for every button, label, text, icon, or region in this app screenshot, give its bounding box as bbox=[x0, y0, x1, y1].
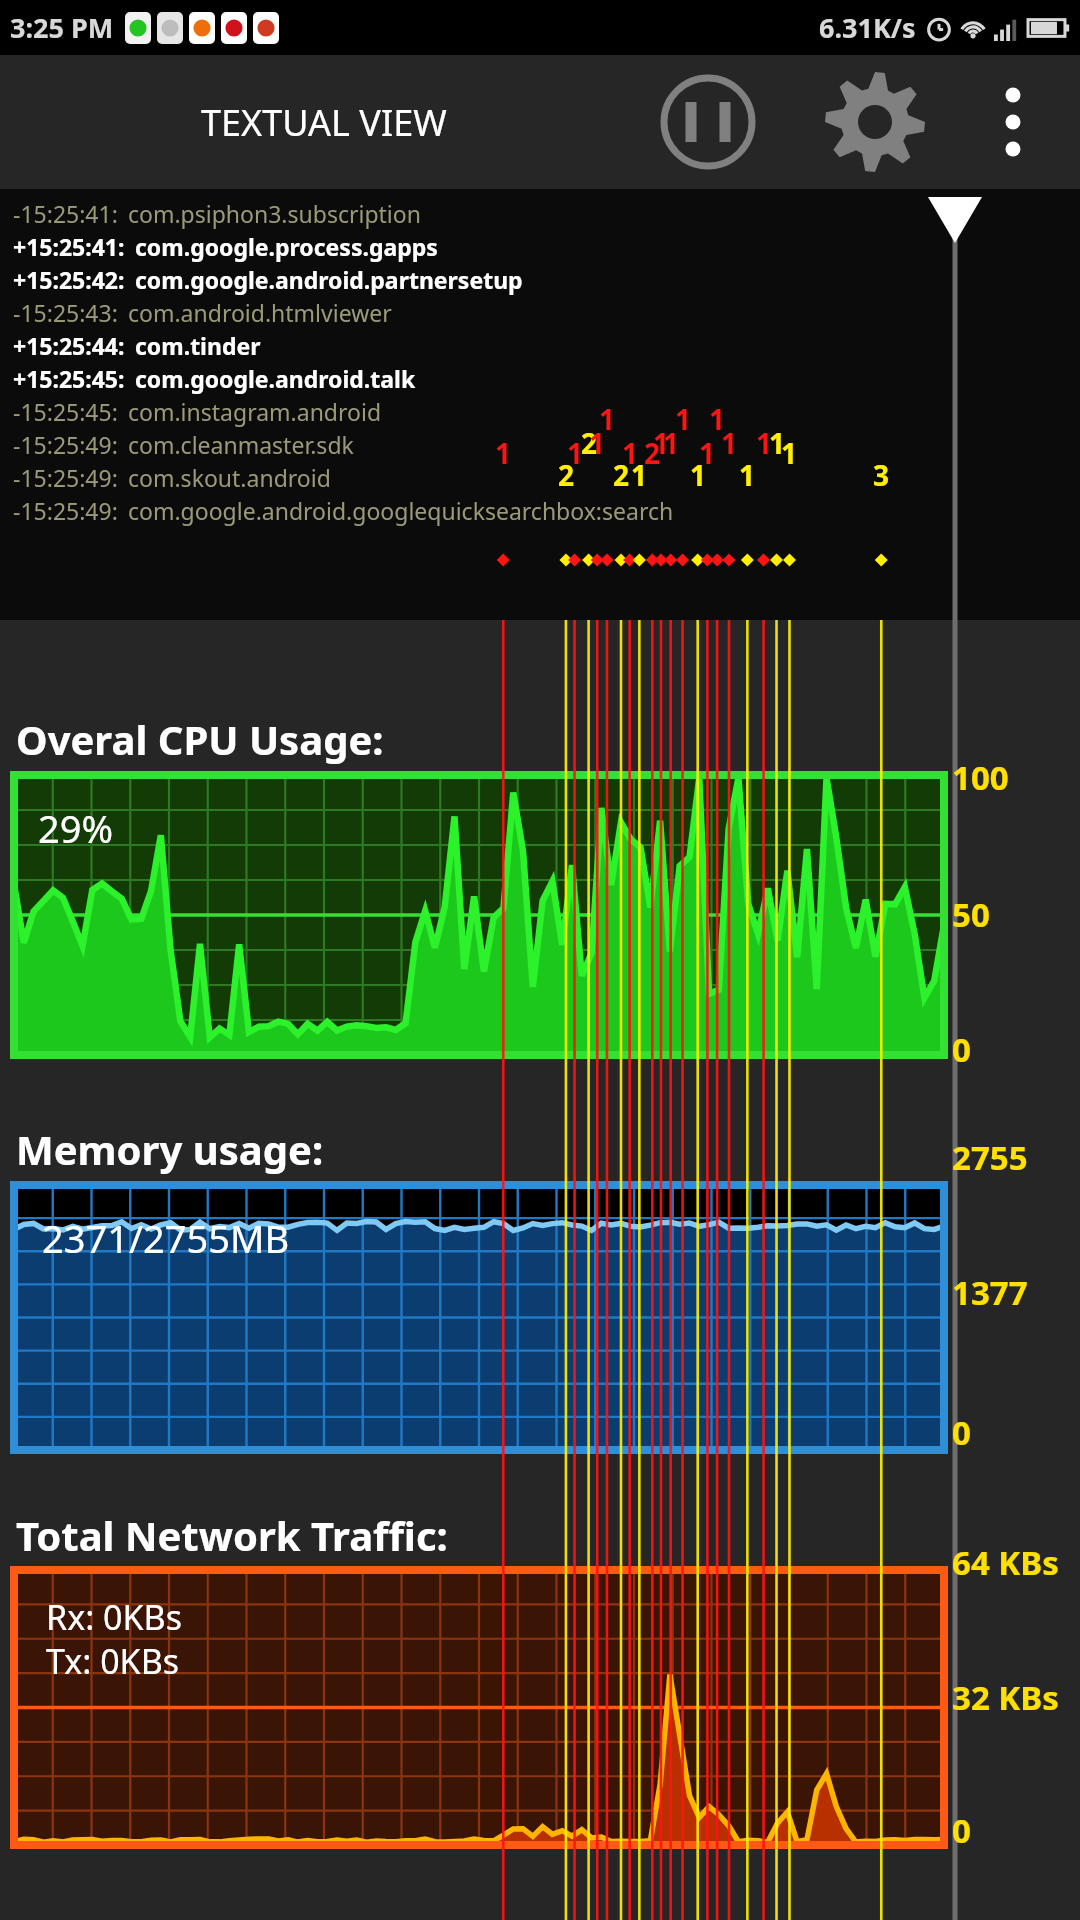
staticText: 1 bbox=[709, 400, 726, 438]
staticText: 2 bbox=[581, 424, 598, 462]
staticText: com.tinder bbox=[135, 330, 261, 361]
staticText: com.skout.android bbox=[128, 462, 331, 493]
staticText: 1 bbox=[589, 424, 606, 462]
staticText: +15:25:41: bbox=[13, 231, 125, 262]
button[interactable]: Pause monitoring bbox=[768, 67, 878, 177]
staticText: 2755 bbox=[952, 1135, 1028, 1180]
staticText: +15:25:42: bbox=[13, 264, 125, 295]
staticText: com.google.process.gapps bbox=[135, 231, 438, 262]
staticText: Total Network Traffic: bbox=[16, 1508, 448, 1562]
staticText: com.psiphon3.subscription bbox=[128, 198, 421, 229]
button[interactable]: -15:25:49: bbox=[13, 462, 1080, 493]
staticText: 0 bbox=[952, 1027, 971, 1072]
staticText: 100 bbox=[952, 755, 1009, 800]
staticText: +15:25:45: bbox=[13, 363, 125, 394]
button[interactable]: -15:25:43: bbox=[13, 297, 1080, 328]
staticText: Rx: 0KBs bbox=[46, 1594, 182, 1640]
staticText: 1 bbox=[567, 434, 584, 472]
button[interactable]: More options bbox=[990, 55, 1080, 189]
staticText: 1 bbox=[675, 400, 692, 438]
staticText: 32 KBs bbox=[952, 1675, 1059, 1720]
staticText: 1 bbox=[756, 424, 773, 462]
button[interactable]: +15:25:45: bbox=[13, 363, 1080, 394]
staticText: com.cleanmaster.sdk bbox=[128, 429, 354, 460]
staticText: com.android.htmlviewer bbox=[128, 297, 392, 328]
staticText: 1 bbox=[599, 400, 616, 438]
button[interactable]: -15:25:41: bbox=[13, 198, 1080, 229]
button[interactable]: +15:25:44: bbox=[13, 330, 1080, 361]
button[interactable]: +15:25:41: bbox=[13, 231, 1080, 262]
staticText: 1 bbox=[721, 424, 738, 462]
staticText: com.instagram.android bbox=[128, 396, 382, 427]
staticText: 3:25 PM bbox=[10, 9, 114, 46]
staticText: 1 bbox=[622, 434, 639, 472]
staticText: Overal CPU Usage: bbox=[16, 712, 384, 766]
staticText: -15:25:43: bbox=[13, 297, 118, 328]
staticText: 2371/2755MB bbox=[42, 1212, 290, 1264]
staticText: -15:25:49: bbox=[13, 495, 118, 526]
staticText: 29% bbox=[38, 802, 114, 854]
staticText: -15:25:41: bbox=[13, 198, 118, 229]
staticText: -15:25:45: bbox=[13, 396, 118, 427]
button[interactable]: TEXTUAL VIEW bbox=[0, 55, 648, 189]
button[interactable]: +15:25:42: bbox=[13, 264, 1080, 295]
staticText: com.google.android.googlequicksearchbox:… bbox=[128, 495, 674, 526]
staticText: 1 bbox=[631, 456, 648, 494]
staticText: 1377 bbox=[952, 1270, 1028, 1315]
staticText: 1 bbox=[663, 424, 680, 462]
staticText: +15:25:44: bbox=[13, 330, 125, 361]
staticText: -15:25:49: bbox=[13, 429, 118, 460]
button[interactable]: -15:25:49: bbox=[13, 495, 1080, 526]
staticText: 1 bbox=[495, 434, 512, 472]
staticText: 3 bbox=[873, 456, 890, 494]
staticText: 0 bbox=[952, 1808, 971, 1853]
staticText: 1 bbox=[653, 424, 670, 462]
staticText: com.google.android.partnersetup bbox=[135, 264, 523, 295]
staticText: 1 bbox=[690, 456, 707, 494]
staticText: 0 bbox=[952, 1410, 971, 1455]
staticText: Memory usage: bbox=[16, 1122, 324, 1176]
staticText: 64 KBs bbox=[952, 1540, 1059, 1585]
staticText: 2 bbox=[558, 456, 575, 494]
staticText: 2 bbox=[644, 434, 661, 472]
button[interactable]: Settings bbox=[878, 66, 990, 178]
button[interactable]: -15:25:49: bbox=[13, 429, 1080, 460]
staticText: Tx: 0KBs bbox=[46, 1638, 180, 1684]
staticText: TEXTUAL VIEW bbox=[201, 98, 447, 147]
button[interactable]: -15:25:45: bbox=[13, 396, 1080, 427]
staticText: 1 bbox=[781, 434, 798, 472]
staticText: 50 bbox=[952, 892, 990, 937]
staticText: 2 bbox=[613, 456, 630, 494]
staticText: 1 bbox=[739, 456, 756, 494]
staticText: 1 bbox=[699, 434, 716, 472]
staticText: 1 bbox=[769, 424, 786, 462]
staticText: com.google.android.talk bbox=[135, 363, 416, 394]
staticText: -15:25:49: bbox=[13, 462, 118, 493]
staticText: 6.31K/s bbox=[819, 9, 916, 46]
